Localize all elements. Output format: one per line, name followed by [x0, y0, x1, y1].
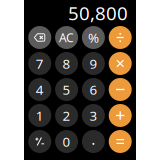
staticText: 4 [36, 81, 44, 98]
button[interactable]: 3 [82, 104, 105, 127]
button[interactable]: 6 [82, 78, 105, 101]
staticText: AC [59, 29, 74, 45]
staticText: 2 [63, 107, 71, 124]
button[interactable]: Subtract [109, 78, 132, 101]
staticText: 50,800 [68, 1, 128, 25]
button[interactable]: Divide [109, 26, 132, 49]
button[interactable]: 9 [82, 52, 105, 75]
button[interactable]: Decimal point [82, 130, 105, 153]
button[interactable]: 5 [55, 78, 78, 101]
button[interactable]: Multiply [109, 52, 132, 75]
staticText: 1 [36, 107, 44, 124]
staticText: 9 [89, 55, 97, 72]
button[interactable]: 1 [28, 104, 51, 127]
staticText: 8 [63, 55, 71, 72]
button[interactable]: AC [55, 26, 78, 49]
staticText: 0 [63, 133, 71, 150]
button[interactable]: Delete [28, 26, 51, 49]
button[interactable]: 0 [55, 130, 78, 153]
button[interactable]: Plus or minus [28, 130, 51, 153]
button[interactable]: 8 [55, 52, 78, 75]
button[interactable]: 7 [28, 52, 51, 75]
button[interactable]: 4 [28, 78, 51, 101]
staticText: 5 [63, 81, 71, 98]
button[interactable]: Equals [109, 130, 132, 153]
button[interactable]: Add [109, 104, 132, 127]
button[interactable]: % [82, 26, 105, 49]
button[interactable]: 2 [55, 104, 78, 127]
staticText: 6 [89, 81, 97, 98]
staticText: % [88, 29, 99, 46]
staticText: 3 [89, 107, 97, 124]
staticText: 7 [36, 55, 44, 72]
